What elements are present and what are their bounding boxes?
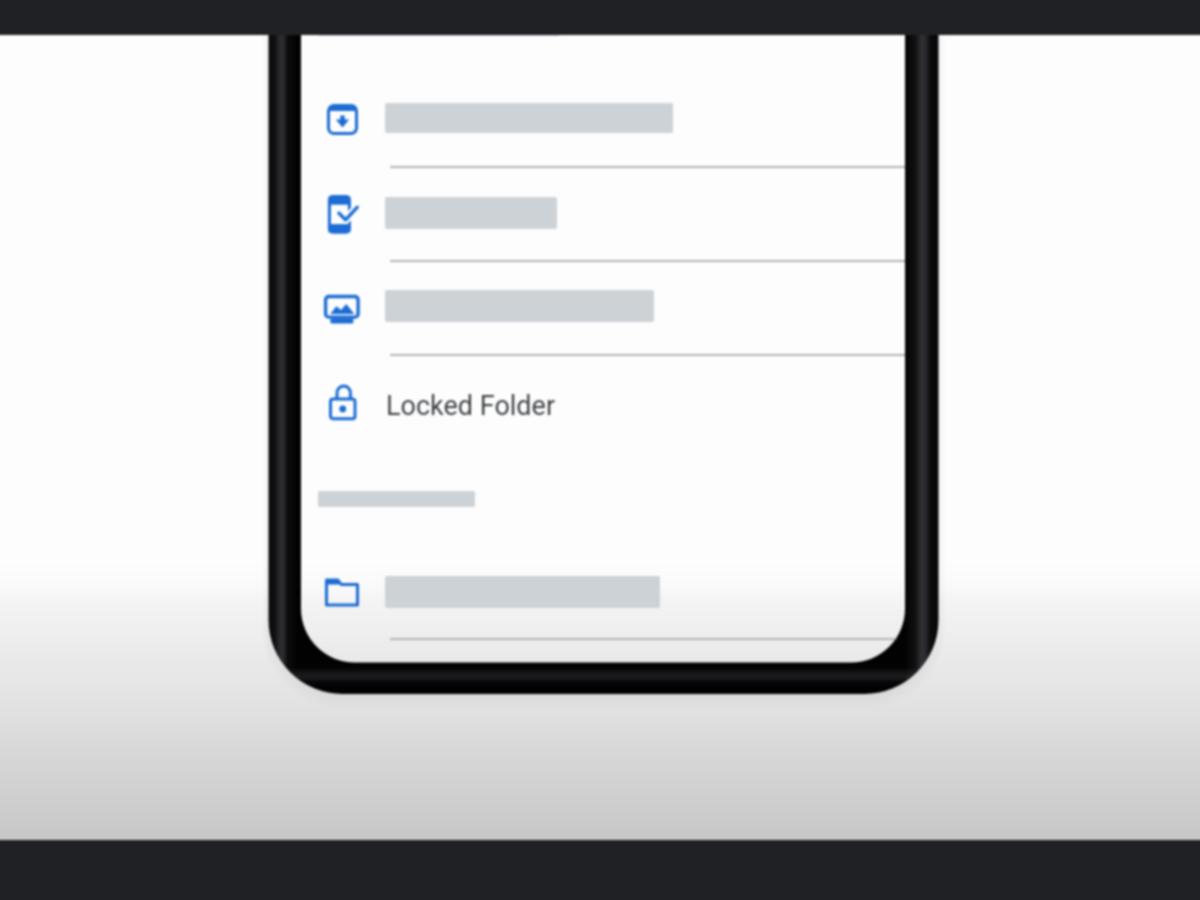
staticText: Locked Folder <box>386 390 556 422</box>
button[interactable]: Photo frame <box>301 274 905 338</box>
button[interactable]: On this device <box>301 181 905 245</box>
button[interactable]: Downloads <box>301 86 905 150</box>
button[interactable]: Folder <box>301 560 905 624</box>
button[interactable]: Locked Folder <box>301 373 905 437</box>
